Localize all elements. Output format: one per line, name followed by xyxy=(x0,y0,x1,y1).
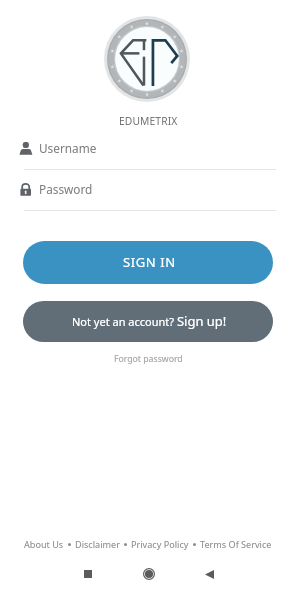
button[interactable]: Password xyxy=(0,174,296,212)
button[interactable]: Back xyxy=(179,555,240,592)
button[interactable]: Username xyxy=(0,133,296,171)
staticText: Username xyxy=(39,140,97,156)
button[interactable]: Recent apps xyxy=(57,555,118,592)
button[interactable]: Not yet an account? Sign up! xyxy=(23,301,273,342)
button[interactable]: Terms Of Service xyxy=(200,538,272,550)
button[interactable]: Privacy Policy xyxy=(131,538,189,550)
button[interactable]: Disclaimer xyxy=(75,538,120,550)
button[interactable]: SIGN IN xyxy=(23,241,273,284)
staticText: EDUMETRIX xyxy=(119,114,178,128)
button[interactable]: Forgot password xyxy=(106,350,191,368)
button[interactable]: About Us xyxy=(24,538,64,550)
staticText: SIGN IN xyxy=(123,253,176,271)
staticText: Not yet an account? Sign up! xyxy=(72,312,227,330)
staticText: Password xyxy=(39,181,93,197)
button[interactable]: Home xyxy=(118,555,179,592)
